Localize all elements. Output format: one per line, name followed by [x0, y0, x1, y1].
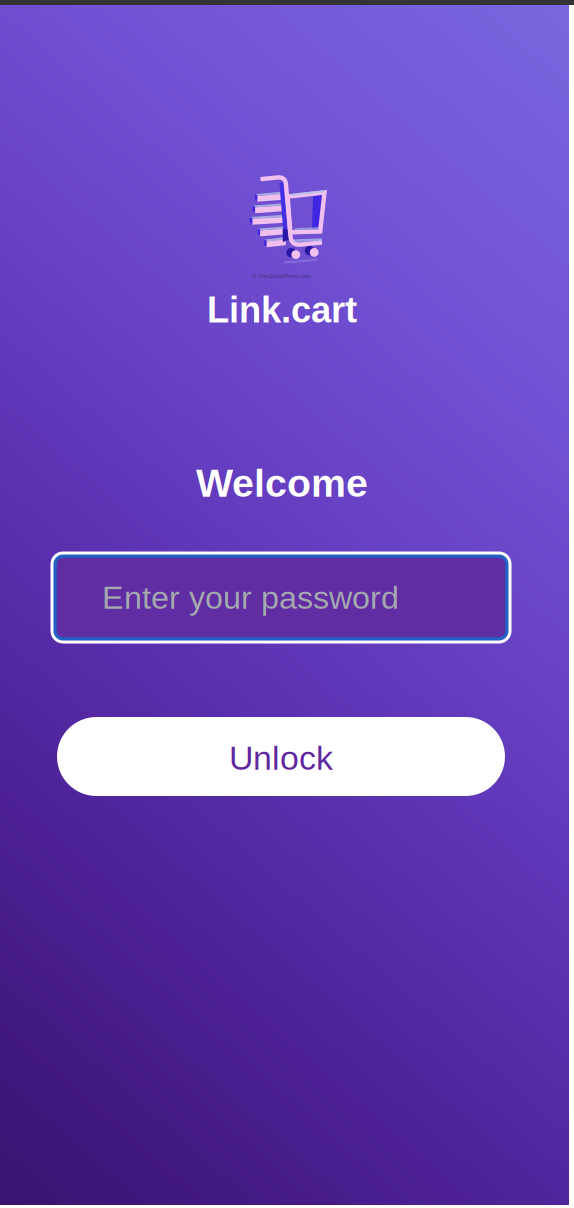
button[interactable]: Enter your password	[52, 553, 510, 642]
staticText: Unlock	[229, 739, 333, 777]
button[interactable]: Unlock	[57, 717, 505, 796]
staticText: Enter your password	[102, 579, 399, 615]
staticText: © CanStockPhoto.com	[252, 273, 311, 279]
staticText: Link.cart	[207, 290, 357, 330]
staticText: Welcome	[196, 461, 368, 505]
